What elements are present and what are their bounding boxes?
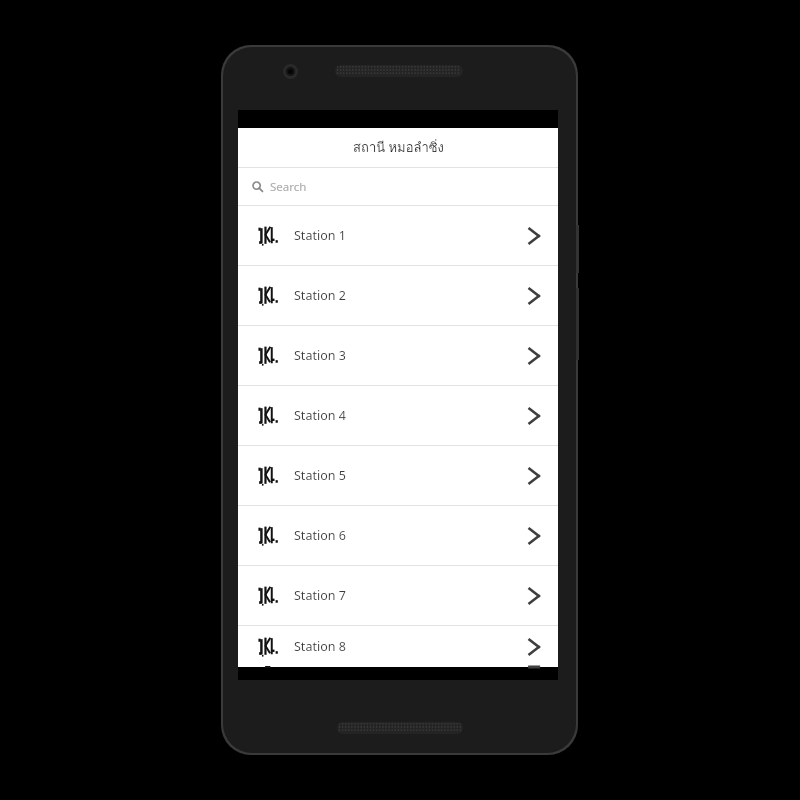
other: Station logo — [256, 341, 282, 371]
other: Open station — [526, 524, 542, 548]
button[interactable]: Station logo — [238, 326, 558, 385]
other: Station logo — [256, 221, 282, 251]
staticText: Station 7 — [294, 587, 346, 604]
button[interactable]: Station logo — [238, 266, 558, 325]
other: Station logo — [256, 401, 282, 431]
other: Open station — [526, 404, 542, 428]
staticText: Station 8 — [294, 638, 346, 655]
staticText: Station 3 — [294, 347, 346, 364]
staticText: Station 5 — [294, 467, 346, 484]
other: Open station — [526, 464, 542, 488]
staticText: Station 6 — [294, 527, 346, 544]
staticText: สถานี หมอลำซิ่ง — [353, 137, 444, 158]
staticText: Search — [270, 179, 307, 195]
other: Station logo — [256, 632, 282, 662]
button[interactable]: Station logo — [238, 626, 558, 667]
other: Station logo — [256, 281, 282, 311]
other: Open station — [526, 224, 542, 248]
other: Station logo — [256, 521, 282, 551]
staticText: Station 4 — [294, 407, 346, 424]
other: Station logo — [256, 461, 282, 491]
staticText: Station 1 — [294, 227, 346, 244]
other: Open station — [526, 584, 542, 608]
other: Station logo — [256, 581, 282, 611]
button[interactable]: Station logo — [238, 566, 558, 625]
button[interactable]: Station logo — [238, 206, 558, 265]
other: Open station — [526, 635, 542, 659]
button[interactable]: Search — [238, 168, 558, 205]
other: Search — [252, 181, 263, 192]
staticText: Station 2 — [294, 287, 346, 304]
other: Open station — [526, 284, 542, 308]
other: Open station — [526, 344, 542, 368]
button[interactable]: Station logo — [238, 446, 558, 505]
button[interactable]: Station logo — [238, 506, 558, 565]
button[interactable]: Station logo — [238, 386, 558, 445]
